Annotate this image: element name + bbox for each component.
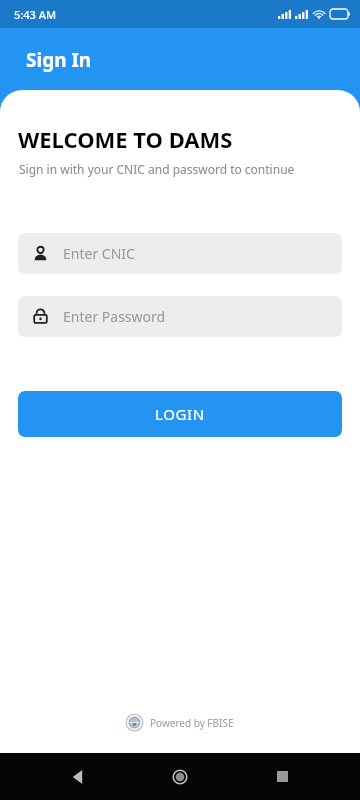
staticText: Sign in with your CNIC and password to c… [19,161,295,177]
button[interactable]: Enter CNIC [18,233,342,274]
staticText: Sign In [26,47,92,73]
button[interactable]: Home [156,753,204,800]
staticText: 5:43 AM [14,7,57,22]
staticText: WELCOME TO DAMS [18,124,233,154]
button[interactable]: Back [54,753,102,800]
button[interactable]: LOGIN [18,391,342,437]
button[interactable]: Enter Password [18,296,342,337]
staticText: Powered by FBISE [150,716,234,730]
staticText: Enter CNIC [63,244,135,263]
staticText: Enter Password [63,307,166,326]
staticText: LOGIN [155,404,205,424]
button[interactable]: Recent apps [258,753,306,800]
